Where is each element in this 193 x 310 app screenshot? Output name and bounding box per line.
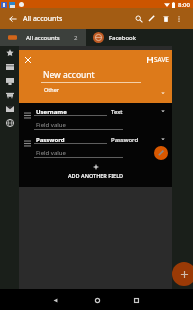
button[interactable]: Close [20,52,36,68]
button[interactable]: Tags [0,46,19,60]
button[interactable]: ADD ANOTHER FIELD [19,159,172,187]
staticText: Password [111,136,139,144]
button[interactable]: Back [2,8,23,29]
button[interactable]: Home [87,290,107,310]
staticText: 8:00 [178,1,190,9]
staticText: All accounts [26,34,60,42]
button[interactable]: Search [131,8,146,29]
button[interactable]: Generate password [154,146,168,160]
staticText: ADD ANOTHER FIELD [68,172,124,179]
staticText: Password [36,136,65,144]
button[interactable]: Delete [158,8,173,29]
button[interactable]: SAVE [147,55,169,64]
button[interactable]: Shopping [0,88,19,102]
button[interactable]: Password [19,131,172,159]
button[interactable]: Username [19,103,172,131]
button[interactable]: Cards [0,60,19,74]
staticText: Field value [36,149,66,157]
staticText: New account [43,69,95,81]
staticText: 2 [74,34,78,42]
button[interactable]: Web [0,116,19,130]
button[interactable]: Facebook [86,29,193,46]
staticText: Facebook [109,34,136,42]
staticText: Username [36,108,67,116]
staticText: SAVE [154,55,169,64]
button[interactable]: Edit [144,8,159,29]
button[interactable]: Computers [0,74,19,88]
button[interactable]: Mail [0,102,19,116]
staticText: Text [111,108,123,116]
button[interactable]: Add account [172,262,193,286]
staticText: Other [44,86,60,93]
button[interactable]: More options [172,8,186,29]
button[interactable]: Back [45,290,65,310]
staticText: All accounts [23,14,63,24]
button[interactable]: Recent apps [126,290,146,310]
button[interactable]: All accounts [0,29,86,46]
staticText: Field value [36,121,66,129]
